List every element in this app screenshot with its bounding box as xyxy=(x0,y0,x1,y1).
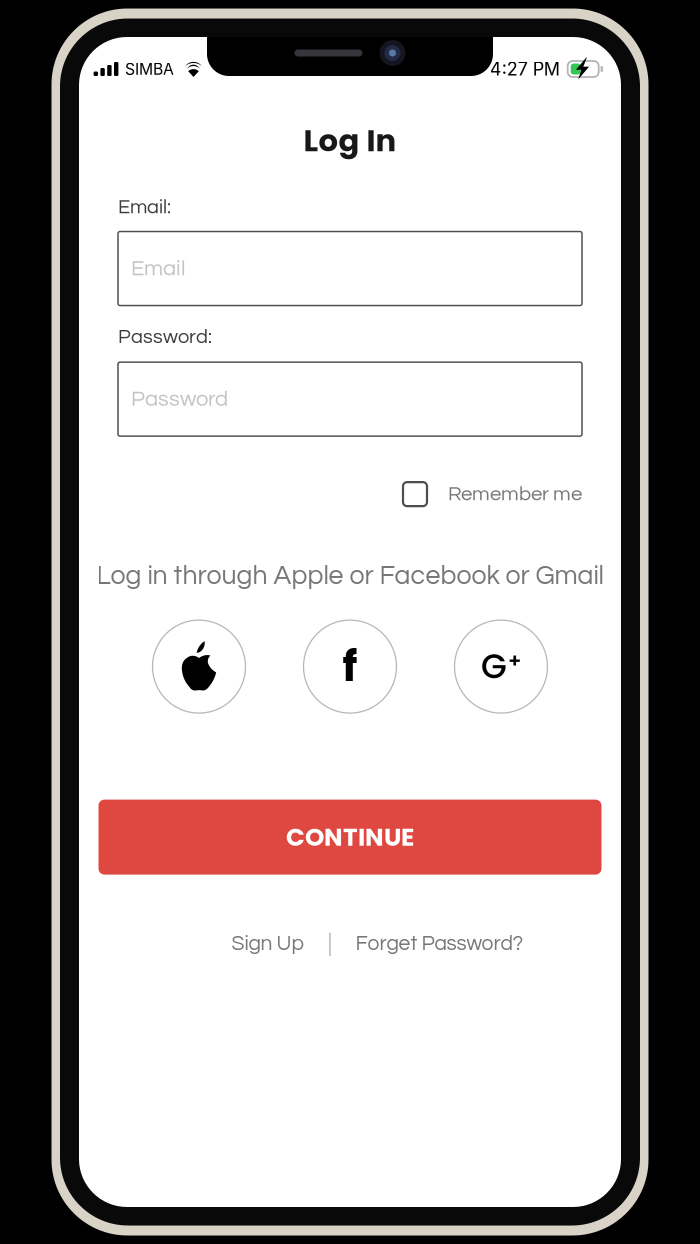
staticText: Log in through Apple or Facebook or Gmai… xyxy=(96,562,603,590)
staticText: 4:27 PM xyxy=(490,58,560,80)
staticText: Password: xyxy=(118,326,212,347)
button[interactable]: CONTINUE xyxy=(98,800,601,875)
button[interactable]: Sign in with Google xyxy=(454,620,548,714)
staticText: Email xyxy=(131,257,186,280)
staticText: G xyxy=(481,643,507,690)
staticText: Sign Up xyxy=(231,933,303,954)
staticText: Forget Password? xyxy=(355,933,523,954)
button[interactable]: Sign in with Facebook xyxy=(303,620,397,714)
staticText: Remember me xyxy=(448,484,582,505)
staticText: SIMBA xyxy=(125,59,174,78)
button[interactable]: Forget Password? xyxy=(355,924,523,964)
staticText: CONTINUE xyxy=(286,820,414,854)
staticText: + xyxy=(508,647,521,675)
staticText: Email: xyxy=(118,197,171,217)
staticText: Log In xyxy=(303,119,396,162)
button[interactable]: Remember me xyxy=(118,474,582,514)
staticText: | xyxy=(327,931,332,957)
button[interactable]: Sign Up xyxy=(230,924,304,964)
staticText: f xyxy=(342,638,357,696)
staticText: Password xyxy=(131,388,228,410)
button[interactable]: Sign in with Apple xyxy=(152,620,246,714)
